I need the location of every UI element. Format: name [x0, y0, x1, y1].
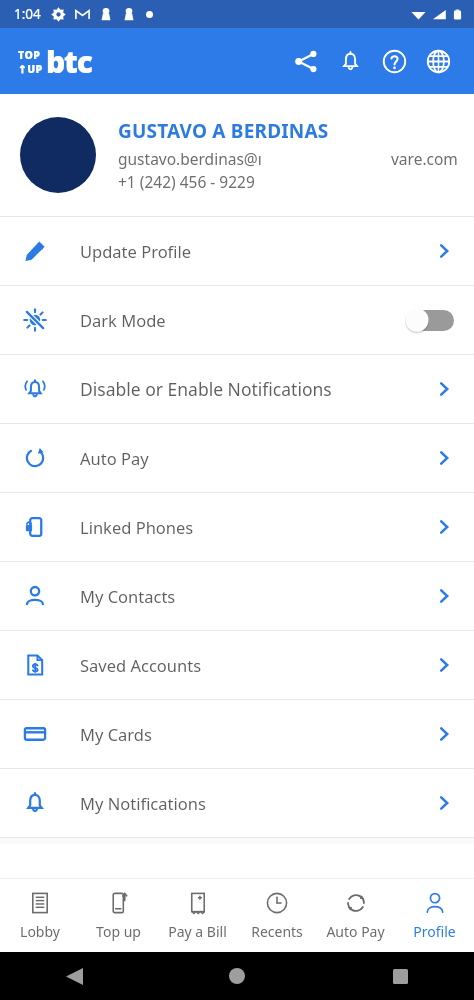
button[interactable]: Top up: [79, 886, 158, 946]
staticText: Auto Pay: [80, 447, 434, 469]
button[interactable]: Recents: [237, 886, 316, 946]
staticText: Update Profile: [80, 240, 434, 262]
button[interactable]: Language: [416, 39, 460, 83]
staticText: Disable or Enable Notifications: [80, 377, 434, 401]
button[interactable]: My Contacts: [0, 562, 474, 630]
button[interactable]: Linked Phones: [0, 493, 474, 561]
staticText: 1:04: [14, 5, 41, 23]
button[interactable]: Dark Mode: [0, 286, 474, 354]
button[interactable]: My Cards: [0, 700, 474, 768]
staticText: Profile: [413, 922, 456, 941]
staticText: My Cards: [80, 723, 434, 745]
staticText: Linked Phones: [80, 516, 434, 538]
button[interactable]: Profile: [395, 886, 474, 946]
staticText: +1 (242) 456 - 9229: [118, 171, 255, 192]
button[interactable]: Update Profile: [0, 217, 474, 285]
button[interactable]: Auto Pay: [0, 424, 474, 492]
staticText: Pay a Bill: [168, 922, 227, 941]
staticText: TOP: [18, 48, 41, 62]
button[interactable]: Disable or Enable Notifications: [0, 355, 474, 423]
staticText: btc: [46, 41, 92, 82]
staticText: My Notifications: [80, 792, 434, 814]
staticText: vare.com: [391, 148, 458, 169]
staticText: ↑UP: [18, 62, 43, 76]
button[interactable]: Recents: [386, 962, 414, 990]
staticText: Top up: [96, 922, 141, 941]
button[interactable]: Back: [60, 962, 88, 990]
button[interactable]: My Notifications: [0, 769, 474, 837]
button[interactable]: Home: [223, 962, 251, 990]
staticText: Recents: [251, 922, 303, 941]
staticText: gustavo.berdinas@ı: [118, 148, 262, 169]
staticText: Dark Mode: [80, 309, 402, 331]
button[interactable]: Lobby: [0, 886, 79, 946]
button[interactable]: Share: [284, 39, 328, 83]
staticText: Auto Pay: [326, 922, 385, 941]
staticText: Lobby: [20, 922, 60, 941]
staticText: GUSTAVO A BERDINAS: [118, 118, 329, 144]
staticText: My Contacts: [80, 585, 434, 607]
button[interactable]: Help: [372, 39, 416, 83]
staticText: Saved Accounts: [80, 654, 434, 676]
button[interactable]: Dark mode toggle: [402, 305, 454, 335]
button[interactable]: Saved Accounts: [0, 631, 474, 699]
button[interactable]: Auto Pay: [316, 886, 395, 946]
button[interactable]: Pay a Bill: [158, 886, 237, 946]
button[interactable]: Notifications: [328, 39, 372, 83]
